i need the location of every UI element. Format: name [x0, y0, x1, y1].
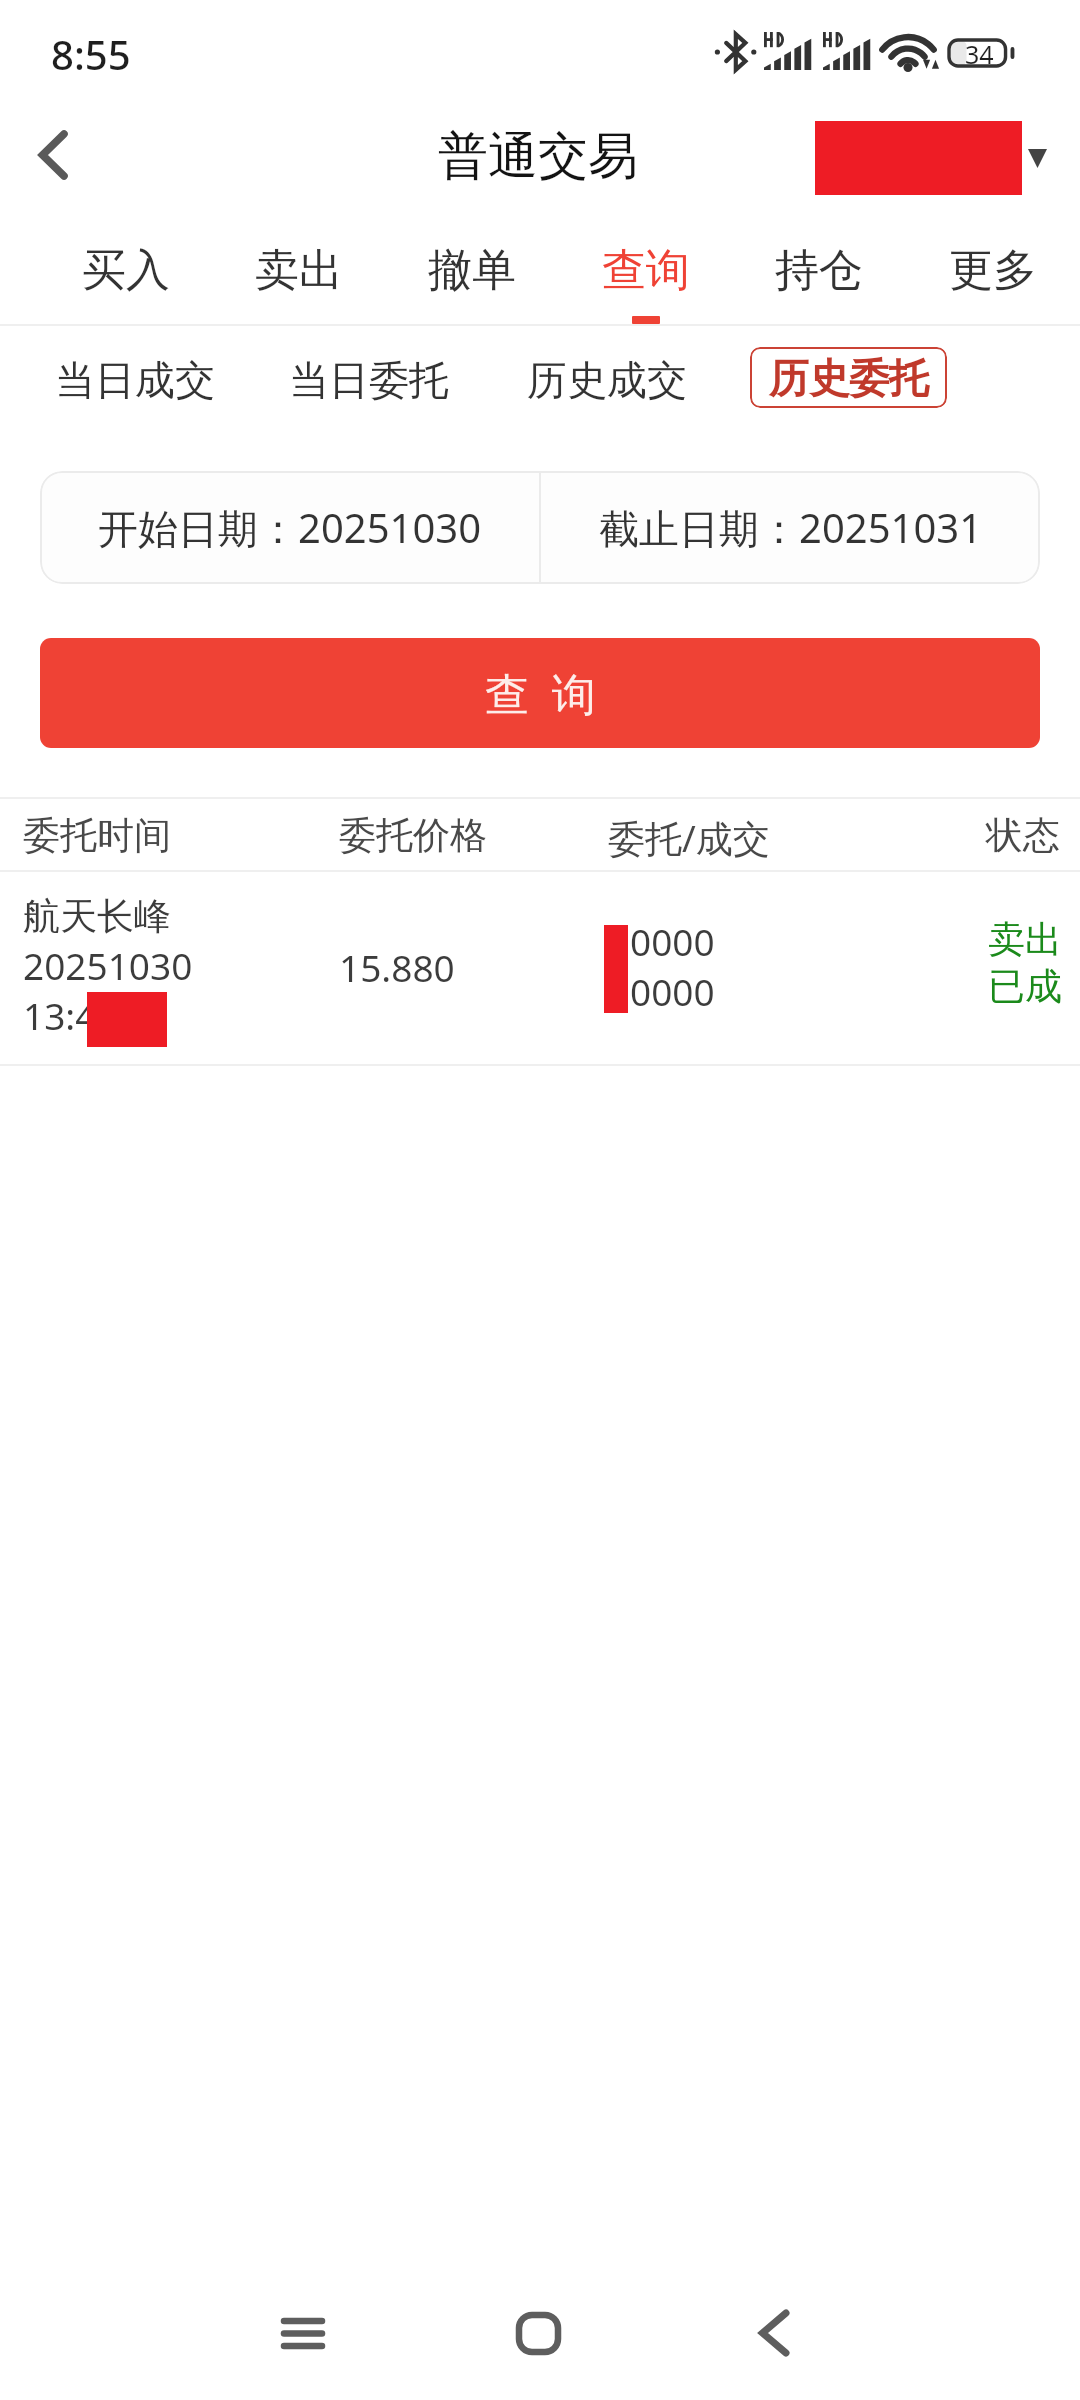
staticText: 34	[965, 37, 994, 67]
staticText: 0000	[630, 966, 715, 1016]
button[interactable]: Back	[684, 2263, 864, 2400]
button[interactable]: Switch account	[815, 121, 1047, 195]
staticText: 查 询	[485, 663, 596, 723]
button[interactable]: 历史委托	[750, 347, 947, 408]
button[interactable]: 更多	[907, 220, 1079, 326]
button[interactable]: 撤单	[386, 220, 558, 326]
button[interactable]: 查询	[560, 220, 732, 326]
button[interactable]: 开始日期：20251030	[40, 471, 539, 584]
staticText: 开始日期：20251030	[98, 500, 482, 555]
staticText: 更多	[949, 243, 1037, 298]
staticText: 20251030	[23, 940, 193, 990]
staticText: 历史成交	[527, 355, 687, 405]
staticText: 持仓	[775, 243, 863, 298]
staticText: 委托时间	[23, 812, 171, 859]
staticText: 15.880	[339, 942, 455, 992]
button[interactable]: 卖出	[213, 220, 385, 326]
button[interactable]: Recent apps	[213, 2263, 393, 2400]
button[interactable]: 当日委托	[272, 341, 466, 413]
staticText: 卖出	[988, 916, 1062, 963]
staticText: 已成	[988, 963, 1062, 1010]
button[interactable]: 买入	[40, 220, 212, 326]
staticText: 当日委托	[289, 355, 449, 405]
staticText: 委托/成交	[608, 812, 770, 863]
staticText: 卖出	[255, 243, 343, 298]
button[interactable]: 持仓	[733, 220, 905, 326]
staticText: 8:55	[51, 27, 131, 81]
staticText: 买入	[82, 243, 170, 298]
staticText: 当日成交	[55, 355, 215, 405]
staticText: 普通交易	[438, 125, 638, 188]
button[interactable]: 截止日期：20251031	[541, 471, 1040, 584]
staticText: 查询	[602, 243, 690, 298]
button[interactable]: 历史成交	[510, 341, 704, 413]
staticText: 状态	[986, 812, 1060, 859]
staticText: 委托价格	[339, 812, 487, 859]
button[interactable]: 当日成交	[38, 341, 232, 413]
staticText: 撤单	[428, 243, 516, 298]
button[interactable]: 查 询	[40, 638, 1040, 748]
button[interactable]: Home	[448, 2263, 628, 2400]
staticText: 截止日期：20251031	[599, 500, 983, 555]
staticText: 历史委托	[769, 353, 929, 403]
button[interactable]: 航天长峰	[0, 872, 1080, 1064]
button[interactable]: Back	[14, 116, 92, 194]
staticText: 13:4	[23, 990, 97, 1040]
staticText: 航天长峰	[23, 893, 171, 940]
staticText: 0000	[630, 916, 715, 966]
